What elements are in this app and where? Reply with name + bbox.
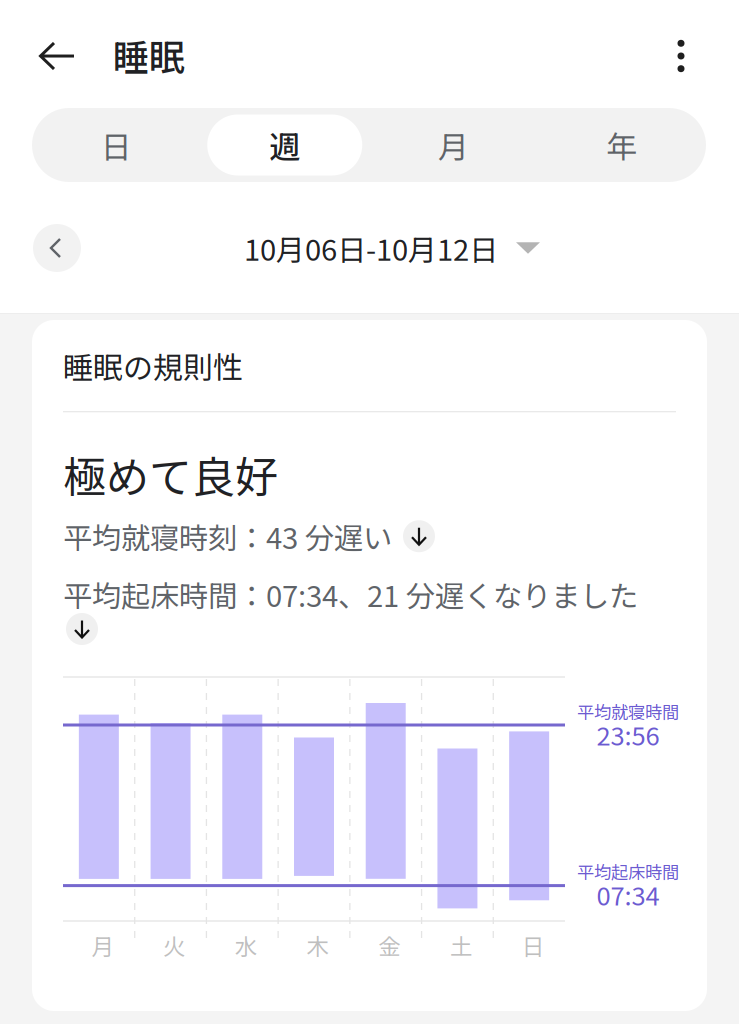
- staticText: 土: [450, 929, 473, 962]
- button[interactable]: Previous week: [33, 224, 81, 272]
- staticText: 水: [235, 929, 258, 962]
- staticText: 月: [91, 929, 114, 962]
- staticText: 極めて良好: [63, 443, 278, 505]
- button[interactable]: Back: [26, 25, 88, 87]
- button[interactable]: 週: [200, 108, 369, 182]
- staticText: 平均起床時間: [577, 859, 679, 884]
- staticText: 木: [306, 929, 329, 962]
- button[interactable]: 10月06日-10月12日: [244, 224, 540, 272]
- staticText: 日: [101, 123, 132, 167]
- staticText: 23:56: [596, 716, 659, 753]
- staticText: 日: [522, 929, 545, 962]
- staticText: 月: [438, 123, 469, 167]
- button[interactable]: 月: [369, 108, 537, 182]
- staticText: 火: [163, 929, 186, 962]
- staticText: 平均起床時間：07:34、21 分遅くなりました: [63, 573, 638, 615]
- staticText: 07:34: [596, 876, 659, 913]
- staticText: 平均就寝時刻：43 分遅い: [63, 515, 392, 557]
- staticText: 10月06日-10月12日: [244, 227, 498, 269]
- button[interactable]: 日: [32, 108, 200, 182]
- staticText: 金: [378, 929, 401, 962]
- button[interactable]: More options: [650, 25, 712, 87]
- staticText: 平均就寝時間: [577, 699, 679, 724]
- staticText: 睡眠: [113, 29, 185, 81]
- staticText: 睡眠の規則性: [63, 344, 243, 387]
- button[interactable]: 年: [537, 108, 706, 182]
- staticText: 年: [606, 123, 637, 167]
- staticText: 週: [269, 123, 300, 167]
